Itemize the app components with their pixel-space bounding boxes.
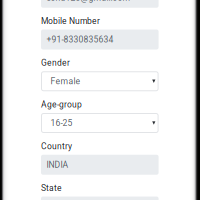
staticText: +91-8330835634: [47, 34, 114, 45]
staticText: Gender: [41, 58, 70, 68]
staticText: 16-25: [50, 118, 72, 128]
staticText: Age-group: [41, 99, 82, 109]
staticText: Country: [41, 141, 72, 151]
staticText: State: [41, 183, 62, 193]
button[interactable]: Female: [41, 71, 159, 91]
button[interactable]: INDIA: [41, 155, 159, 175]
staticText: sonu123@gmail.com: [47, 0, 131, 3]
button[interactable]: Odisha: [41, 196, 159, 200]
staticText: INDIA: [47, 160, 69, 170]
staticText: Mobile Number: [41, 16, 100, 26]
button[interactable]: sonu123@gmail.com: [41, 0, 159, 8]
staticText: Female: [50, 76, 80, 86]
button[interactable]: 16-25: [41, 113, 159, 133]
button[interactable]: +91-8330835634: [41, 29, 159, 49]
